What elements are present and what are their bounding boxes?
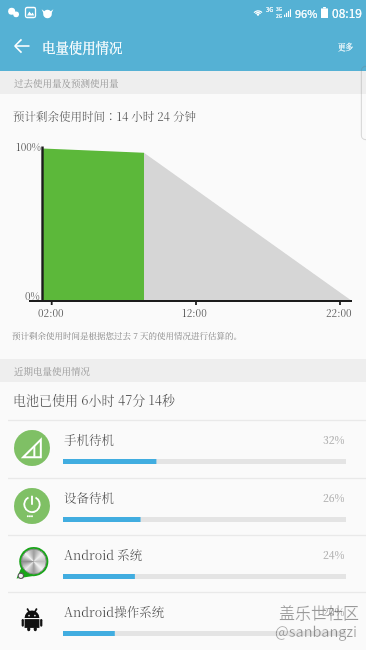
staticText: 近期电量使用情况 bbox=[14, 364, 91, 378]
button[interactable]: Android 系统 bbox=[0, 535, 366, 592]
staticText: 100% bbox=[16, 139, 42, 153]
staticText: 预计剩余使用时间是根据您过去 7 天的使用情况进行估算的。 bbox=[12, 329, 243, 341]
staticText: 更多 bbox=[338, 41, 353, 52]
button[interactable]: 设备待机 bbox=[0, 478, 366, 535]
staticText: 电量使用情况 bbox=[42, 38, 123, 57]
staticText: 3G bbox=[266, 5, 274, 14]
staticText: 32% bbox=[323, 432, 345, 447]
staticText: 20% bbox=[323, 604, 345, 619]
button[interactable]: 手机待机 bbox=[0, 420, 366, 477]
staticText: 设备待机 bbox=[64, 489, 115, 507]
staticText: @sanbangzi bbox=[275, 620, 358, 641]
staticText: 12:00 bbox=[182, 305, 207, 319]
staticText: 2G bbox=[276, 12, 283, 18]
staticText: 过去使用量及预测使用量 bbox=[14, 76, 119, 90]
staticText: 电池已使用 6小时 47分 14秒 bbox=[13, 390, 175, 409]
staticText: 0% bbox=[25, 288, 40, 302]
staticText: Android操作系统 bbox=[64, 603, 165, 621]
button[interactable]: Back bbox=[6, 30, 38, 62]
staticText: 26% bbox=[323, 490, 345, 505]
staticText: 24% bbox=[323, 547, 345, 562]
staticText: 盖乐世社区 bbox=[279, 600, 360, 623]
staticText: 22:00 bbox=[326, 305, 352, 319]
staticText: 预计剩余使用时间：14 小时 24 分钟 bbox=[13, 108, 196, 125]
staticText: 3G bbox=[276, 5, 283, 12]
staticText: 02:00 bbox=[38, 305, 64, 319]
button[interactable]: 更多 bbox=[325, 32, 366, 61]
staticText: Android 系统 bbox=[64, 546, 143, 564]
button[interactable]: Android操作系统 bbox=[0, 592, 366, 649]
staticText: 手机待机 bbox=[64, 431, 115, 449]
staticText: 96% bbox=[295, 5, 318, 21]
staticText: 08:19 bbox=[332, 4, 362, 21]
